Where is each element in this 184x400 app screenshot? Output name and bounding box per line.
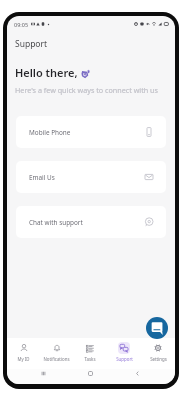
staticText: Mobile Phone xyxy=(29,128,71,137)
button[interactable]: Home xyxy=(84,369,96,377)
button[interactable]: Settings xyxy=(141,342,175,362)
staticText: Support xyxy=(15,38,48,50)
staticText: 09:05 xyxy=(14,21,29,28)
button[interactable]: Mobile Phone xyxy=(16,116,166,148)
staticText: Settings xyxy=(150,356,167,362)
button[interactable]: Email Us xyxy=(16,161,166,193)
staticText: Tasks xyxy=(84,356,96,362)
button[interactable]: Chat with support xyxy=(16,206,166,238)
button[interactable]: Back xyxy=(131,369,143,377)
staticText: Notifications xyxy=(43,356,70,362)
button[interactable]: Open chat xyxy=(146,317,168,339)
staticText: Chat with support xyxy=(29,218,83,227)
staticText: Support xyxy=(116,356,133,362)
button[interactable]: My ID xyxy=(7,342,40,362)
button[interactable]: Recents xyxy=(37,369,49,377)
button[interactable]: Notifications xyxy=(40,342,73,362)
staticText: Hello there, xyxy=(15,65,78,80)
staticText: Here's a few quick ways to connect with … xyxy=(15,85,158,95)
button[interactable]: Tasks xyxy=(73,342,107,362)
staticText: Email Us xyxy=(29,173,55,182)
button[interactable]: Support xyxy=(107,342,141,362)
staticText: My ID xyxy=(17,356,30,362)
